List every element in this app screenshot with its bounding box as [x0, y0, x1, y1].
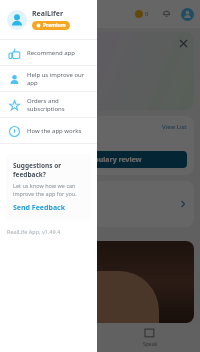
staticText: Let us know how we can improve the app f…: [13, 182, 84, 198]
staticText: Start vocabulary review: [59, 155, 142, 165]
button[interactable]: View List: [162, 123, 187, 131]
staticText: practice with feedback: [12, 76, 76, 84]
button[interactable]: Profile: [181, 8, 194, 21]
button[interactable]: Start vocabulary review: [13, 151, 187, 168]
staticText: Recommend app: [27, 49, 75, 57]
staticText: Help us improve our app: [27, 71, 92, 87]
staticText: Premium: [43, 22, 66, 29]
staticText: Suggestions or feedback?: [13, 161, 84, 179]
button[interactable]: 0: [133, 8, 151, 20]
button[interactable]: Help us improve our app: [0, 66, 97, 91]
staticText: more: [20, 91, 39, 101]
staticText: RealLife App, v1.49.4: [7, 228, 61, 235]
staticText: Speak: [143, 341, 158, 348]
button[interactable]: AI Coach: [6, 32, 194, 110]
button[interactable]: News: [6, 241, 194, 323]
button[interactable]: more: [20, 91, 39, 101]
button[interactable]: How the app works: [0, 118, 97, 143]
staticText: BETA: [57, 65, 69, 72]
button[interactable]: Notifications: [159, 7, 173, 21]
button[interactable]: Close: [178, 38, 188, 48]
staticText: How the app works: [27, 127, 82, 135]
staticText: AI Coach: [12, 62, 52, 74]
button[interactable]: [6, 181, 194, 227]
button[interactable]: Recommend app: [0, 40, 97, 65]
staticText: word: [13, 137, 28, 145]
button[interactable]: Speak: [100, 323, 200, 352]
staticText: RealLifer: [32, 9, 64, 19]
button[interactable]: Send Feedback: [13, 203, 66, 213]
button[interactable]: Orders and subscriptions: [0, 92, 97, 117]
button[interactable]: 3: [0, 323, 100, 352]
staticText: Orders and subscriptions: [27, 97, 92, 113]
staticText: 0: [145, 10, 149, 18]
